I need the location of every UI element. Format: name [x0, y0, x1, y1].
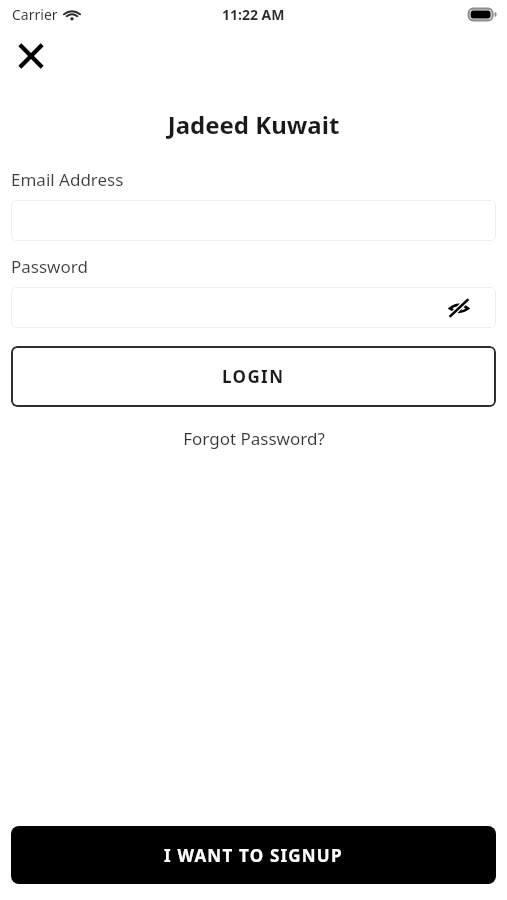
staticText: I WANT TO SIGNUP [164, 844, 343, 867]
staticText: 11:22 AM [222, 5, 285, 24]
button[interactable]: LOGIN [11, 346, 496, 407]
staticText: Email Address [11, 168, 124, 191]
staticText: Forgot Password? [183, 427, 325, 450]
button[interactable]: I WANT TO SIGNUP [11, 826, 496, 884]
staticText: Password [11, 255, 88, 278]
staticText: Jadeed Kuwait [0, 108, 507, 141]
button[interactable]: Forgot Password? [11, 427, 496, 450]
button[interactable]: Show password [446, 295, 472, 321]
staticText: Carrier [12, 5, 58, 24]
button[interactable]: Close [11, 36, 50, 75]
button[interactable]: Show password [11, 287, 496, 328]
button[interactable] [11, 200, 496, 241]
staticText: LOGIN [222, 365, 285, 388]
